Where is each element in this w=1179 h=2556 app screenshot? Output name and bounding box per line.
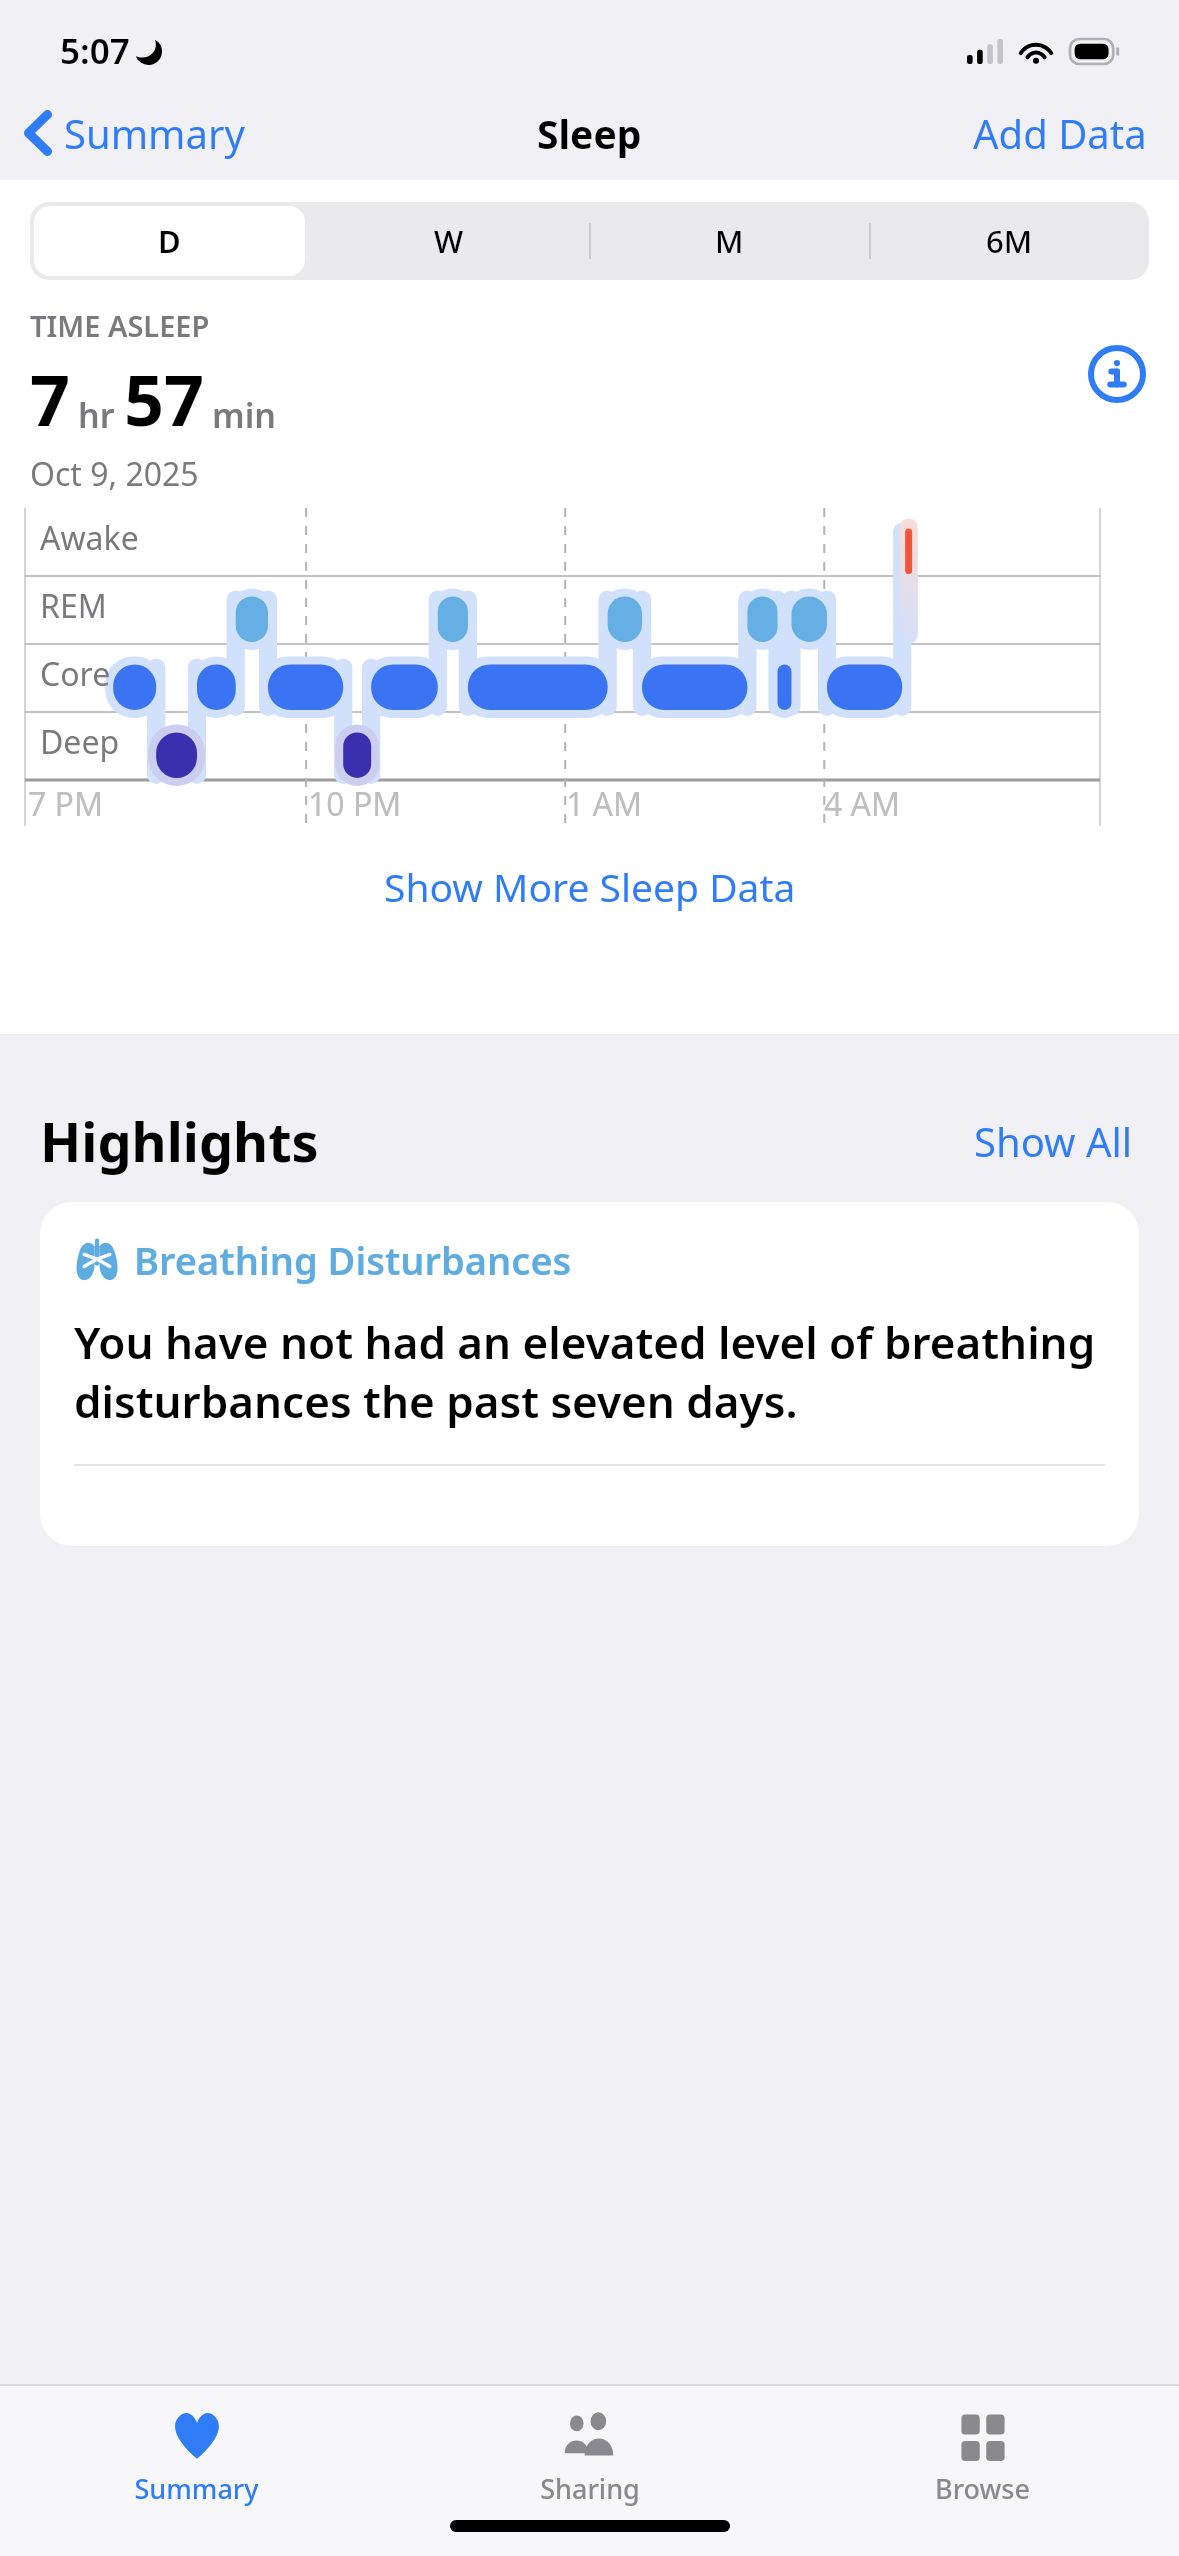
- staticText: Add Data: [973, 106, 1147, 160]
- button[interactable]: M: [589, 202, 869, 280]
- button[interactable]: Summary: [0, 96, 259, 170]
- button[interactable]: D: [30, 202, 309, 280]
- button[interactable]: Add Data: [941, 94, 1179, 172]
- staticText: M: [715, 220, 744, 262]
- staticText: 5:07: [60, 27, 130, 75]
- staticText: W: [434, 220, 464, 262]
- staticText: 57: [124, 351, 205, 446]
- button[interactable]: W: [309, 202, 589, 280]
- staticText: 7: [30, 351, 71, 446]
- staticText: You have not had an elevated level of br…: [74, 1312, 1105, 1430]
- button[interactable]: Summary: [0, 2386, 393, 2508]
- staticText: Browse: [935, 2470, 1030, 2507]
- staticText: Summary: [64, 106, 245, 160]
- staticText: 4 AM: [824, 782, 901, 826]
- staticText: Core: [40, 652, 111, 696]
- button[interactable]: About time asleep: [1085, 342, 1149, 406]
- staticText: Awake: [40, 516, 139, 560]
- staticText: REM: [40, 584, 107, 628]
- staticText: Show More Sleep Data: [384, 860, 796, 913]
- button[interactable]: Browse: [786, 2386, 1179, 2508]
- button[interactable]: Show More Sleep Data: [0, 860, 1179, 913]
- staticText: 10 PM: [308, 782, 402, 826]
- staticText: TIME ASLEEP: [30, 306, 210, 345]
- staticText: Deep: [40, 720, 120, 764]
- button[interactable]: Sharing: [393, 2386, 786, 2508]
- button[interactable]: Show All: [968, 1108, 1139, 1174]
- staticText: Sleep: [537, 107, 642, 160]
- staticText: 1 AM: [566, 782, 643, 826]
- staticText: Sharing: [540, 2470, 640, 2507]
- staticText: Summary: [134, 2470, 259, 2507]
- button[interactable]: 6M: [869, 202, 1149, 280]
- staticText: Breathing Disturbances: [134, 1234, 572, 1286]
- staticText: 7 PM: [28, 782, 104, 826]
- staticText: Highlights: [40, 1104, 319, 1178]
- staticText: D: [158, 220, 181, 262]
- staticText: Oct 9, 2025: [30, 452, 199, 496]
- staticText: hr: [78, 392, 115, 438]
- button[interactable]: Breathing Disturbances: [40, 1202, 1139, 1546]
- staticText: min: [212, 392, 276, 438]
- staticText: 6M: [986, 220, 1033, 262]
- staticText: Show All: [974, 1114, 1133, 1168]
